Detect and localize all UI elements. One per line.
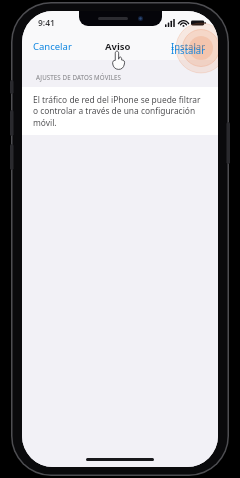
staticText: El tráfico de red del iPhone se puede fi… xyxy=(33,94,207,128)
button[interactable]: Instalar xyxy=(165,36,218,57)
other: Instalar tap indicator xyxy=(22,11,218,467)
staticText: Instalar xyxy=(171,40,206,53)
staticText: Instalar xyxy=(171,44,206,57)
button[interactable]: Cancelar xyxy=(22,36,78,57)
staticText: 9:41 xyxy=(38,17,55,29)
staticText: Cancelar xyxy=(33,40,72,53)
staticText: Aviso xyxy=(105,40,131,53)
button[interactable]: El tráfico de red del iPhone se puede fi… xyxy=(22,87,218,135)
staticText: AJUSTES DE DATOS MÓVILES xyxy=(36,73,122,81)
